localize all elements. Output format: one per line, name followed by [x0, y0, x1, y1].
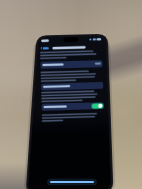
button[interactable]: Photo of a phone showing battery setting… [0, 0, 142, 189]
